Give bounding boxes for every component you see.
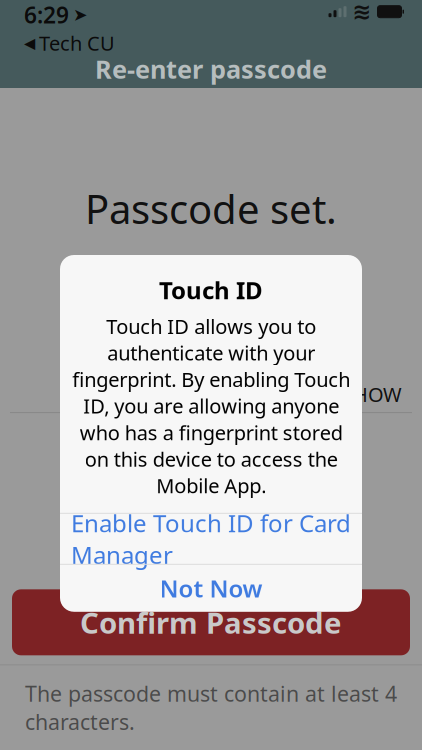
staticText: SHOW (342, 381, 402, 407)
staticText: ➤ (73, 5, 88, 25)
staticText: Tech CU (39, 30, 115, 56)
staticText: The passcode must contain at least 4 cha… (25, 679, 397, 736)
button[interactable]: Enable Touch ID for Card Manager (60, 514, 362, 564)
button[interactable]: Not Now (60, 565, 362, 612)
staticText: Passcode set. (85, 182, 337, 235)
staticText: ≋ (352, 0, 371, 24)
staticText: Touch ID (159, 274, 263, 306)
staticText: ◀ (24, 35, 35, 51)
staticText: Not Now (159, 572, 262, 604)
button[interactable]: SHOW (334, 377, 410, 411)
button[interactable]: Confirm Passcode (12, 589, 410, 655)
staticText: Re-enter passcode (95, 52, 327, 86)
staticText: 6:29 (24, 0, 69, 30)
staticText: Enable Touch ID for Card Manager (71, 507, 351, 571)
staticText: Touch ID allows you to authenticate with… (72, 313, 350, 499)
staticText: Confirm Passcode (80, 603, 342, 642)
